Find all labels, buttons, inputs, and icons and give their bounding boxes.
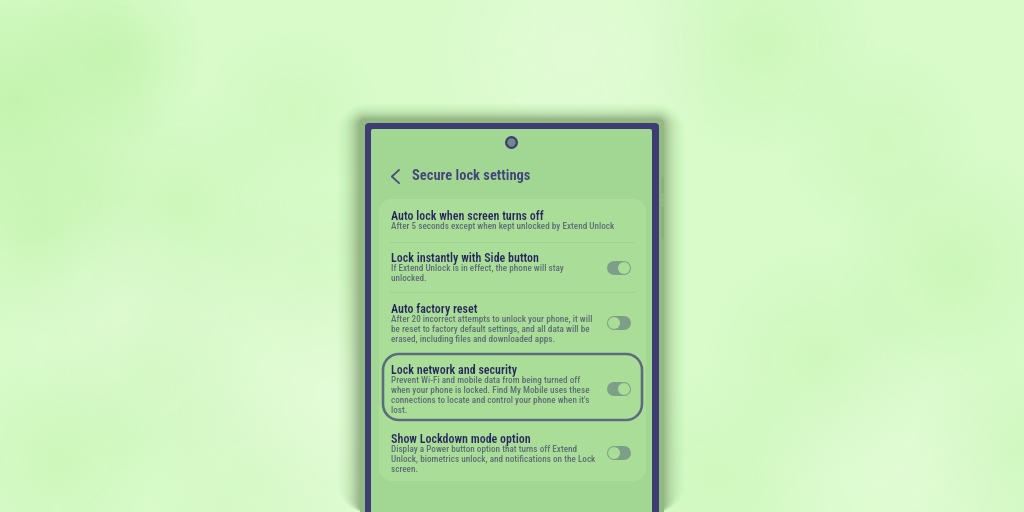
staticText: Prevent Wi-Fi and mobile data from being… xyxy=(391,374,597,415)
button[interactable]: Show Lockdown mode option xyxy=(379,425,646,481)
staticText: Lock instantly with Side button xyxy=(391,251,539,265)
button[interactable]: Auto factory reset xyxy=(379,293,646,353)
button[interactable]: Lock instantly with Side button xyxy=(379,243,646,292)
button[interactable]: On xyxy=(607,261,631,275)
staticText: Auto lock when screen turns off xyxy=(391,209,544,223)
button[interactable]: Lock network and security xyxy=(379,353,646,425)
staticText: After 20 incorrect attempts to unlock yo… xyxy=(391,313,597,344)
staticText: Display a Power button option that turns… xyxy=(391,443,597,474)
button[interactable]: Navigate up xyxy=(382,163,408,189)
staticText: After 5 seconds except when kept unlocke… xyxy=(391,220,615,231)
staticText: If Extend Unlock is in effect, the phone… xyxy=(391,262,597,283)
button[interactable]: Off xyxy=(607,446,631,460)
button[interactable]: Off xyxy=(607,316,631,330)
staticText: Lock network and security xyxy=(391,363,518,377)
button[interactable]: Auto lock when screen turns off xyxy=(379,199,646,242)
staticText: Secure lock settings xyxy=(412,167,531,184)
button[interactable]: On xyxy=(607,382,631,396)
staticText: Show Lockdown mode option xyxy=(391,432,531,446)
staticText: Auto factory reset xyxy=(391,302,478,316)
